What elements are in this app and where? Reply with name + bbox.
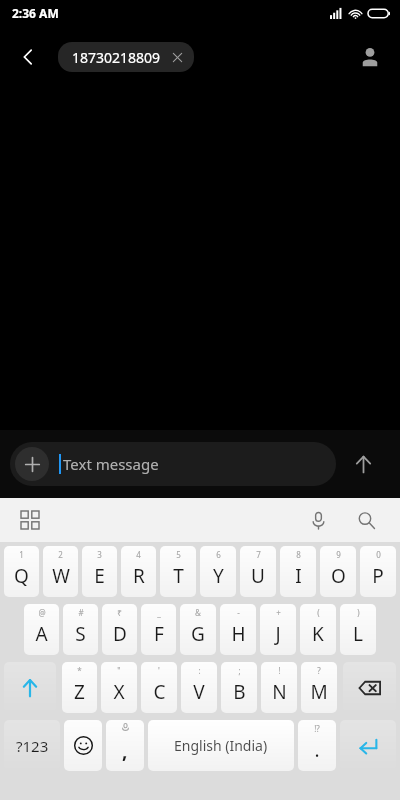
staticText: _ (157, 607, 161, 618)
button[interactable]: English (India) (148, 720, 294, 771)
staticText: ! (278, 665, 281, 676)
staticText: X (113, 679, 125, 705)
other: Emoji (73, 735, 94, 756)
staticText: * (77, 665, 82, 676)
staticText: A (35, 621, 48, 647)
button[interactable]: 1 (4, 546, 39, 597)
button[interactable]: Contact (348, 35, 392, 79)
staticText: D (113, 621, 127, 647)
button[interactable]: & (180, 604, 216, 655)
staticText: 3 (97, 549, 102, 560)
button[interactable]: Add attachment (10, 442, 336, 486)
button[interactable]: Search (346, 500, 386, 540)
button[interactable]: " (101, 662, 137, 713)
button[interactable]: ? (301, 662, 337, 713)
button[interactable]: Voice input (298, 500, 338, 540)
staticText: V (193, 679, 205, 705)
staticText: I (295, 563, 302, 589)
staticText: U (251, 563, 265, 589)
staticText: Q (14, 563, 29, 589)
button[interactable]: : (181, 662, 217, 713)
staticText: J (275, 621, 281, 647)
staticText: B (233, 679, 246, 705)
staticText: ?123 (16, 736, 49, 756)
staticText: ' (158, 665, 160, 676)
staticText: 18730218809 (72, 48, 161, 67)
button[interactable]: Enter (340, 720, 396, 771)
staticText: " (117, 665, 121, 676)
staticText: M (310, 679, 328, 705)
staticText: ; (238, 665, 241, 676)
button[interactable]: ' (141, 662, 177, 713)
button[interactable]: 8 (280, 546, 316, 597)
staticText: N (272, 679, 287, 705)
staticText: ? (317, 665, 321, 676)
staticText: T (173, 563, 184, 589)
staticText: . (314, 737, 320, 763)
button[interactable]: 3 (82, 546, 117, 597)
other: Backspace (358, 676, 382, 700)
button[interactable]: ; (221, 662, 257, 713)
staticText: 5 (176, 549, 181, 560)
staticText: L (353, 621, 363, 647)
button[interactable]: Emoji (64, 720, 102, 771)
staticText: # (78, 607, 84, 618)
staticText: P (372, 563, 384, 589)
button[interactable]: ?123 (4, 720, 60, 771)
button[interactable]: ! (261, 662, 297, 713)
button[interactable]: Shift (4, 662, 56, 713)
staticText: S (75, 621, 86, 647)
button[interactable]: Backspace (343, 662, 396, 713)
button[interactable]: 2 (43, 546, 78, 597)
button[interactable]: 4 (121, 546, 156, 597)
staticText: G (191, 621, 205, 647)
staticText: & (195, 607, 201, 618)
staticText: C (153, 679, 166, 705)
staticText: , (122, 738, 128, 764)
button[interactable]: 6 (200, 546, 236, 597)
button[interactable]: + (260, 604, 296, 655)
staticText: O (331, 563, 346, 589)
staticText: W (52, 563, 70, 589)
staticText: ₹ (117, 607, 122, 618)
staticText: + (276, 607, 281, 618)
button[interactable]: Add attachment (15, 447, 49, 481)
button[interactable]: _ (141, 604, 176, 655)
button[interactable]: 18730218809 (58, 42, 194, 72)
staticText: 2:36 AM (12, 5, 59, 21)
staticText: 2 (58, 549, 63, 560)
button[interactable]: Send (336, 437, 390, 491)
button[interactable]: ( (300, 604, 336, 655)
staticText: Y (213, 563, 224, 589)
staticText: Z (74, 679, 85, 705)
staticText: K (312, 621, 324, 647)
button[interactable]: Back (6, 35, 50, 79)
staticText: 1 (19, 549, 24, 560)
other: Enter (357, 735, 379, 757)
button[interactable]: # (63, 604, 98, 655)
staticText: English (India) (174, 736, 268, 755)
other: Shift (19, 677, 41, 699)
button[interactable]: !? (298, 720, 336, 771)
staticText: - (237, 607, 240, 618)
button[interactable]: ) (340, 604, 376, 655)
button[interactable]: ₹ (102, 604, 137, 655)
button[interactable]: @ (24, 604, 59, 655)
staticText: 8 (296, 549, 301, 560)
staticText: ) (357, 607, 360, 618)
button[interactable]: 5 (160, 546, 196, 597)
button[interactable]: 9 (320, 546, 356, 597)
button[interactable]: 7 (240, 546, 276, 597)
staticText: 9 (336, 549, 341, 560)
staticText: E (94, 563, 105, 589)
button[interactable]: 0 (360, 546, 396, 597)
button[interactable]: Keyboard settings (12, 502, 48, 538)
button[interactable]: * (62, 662, 97, 713)
button[interactable]: , (106, 720, 144, 771)
button[interactable]: - (220, 604, 256, 655)
staticText: Text message (63, 454, 159, 474)
staticText: ( (317, 607, 320, 618)
staticText: R (133, 563, 145, 589)
staticText: F (154, 621, 164, 647)
staticText: 7 (256, 549, 261, 560)
